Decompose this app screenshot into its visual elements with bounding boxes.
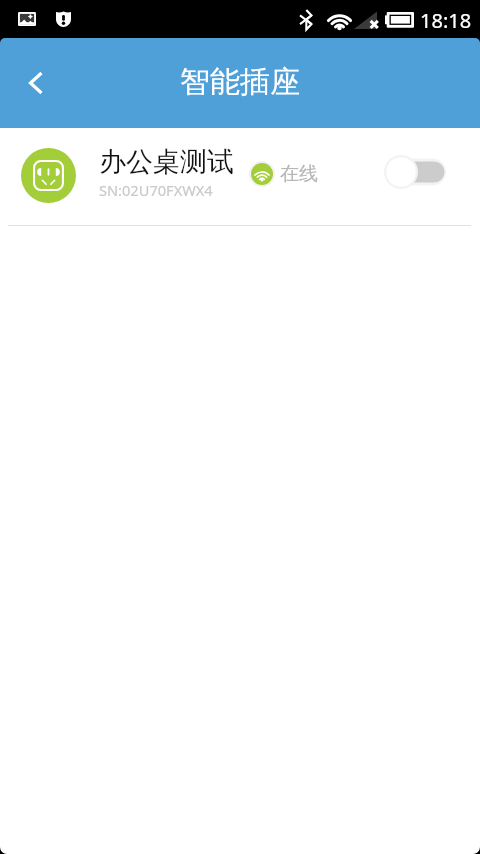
staticText: 18:18 <box>420 7 472 34</box>
button[interactable]: Power switch, off <box>383 153 447 191</box>
button[interactable]: 办公桌测试 <box>0 128 480 225</box>
button[interactable]: Back <box>7 52 65 114</box>
staticText: 在线 <box>280 162 318 186</box>
staticText: SN:02U70FXWX4 <box>99 180 213 200</box>
staticText: 办公桌测试 <box>99 145 234 179</box>
staticText: 智能插座 <box>180 63 300 101</box>
